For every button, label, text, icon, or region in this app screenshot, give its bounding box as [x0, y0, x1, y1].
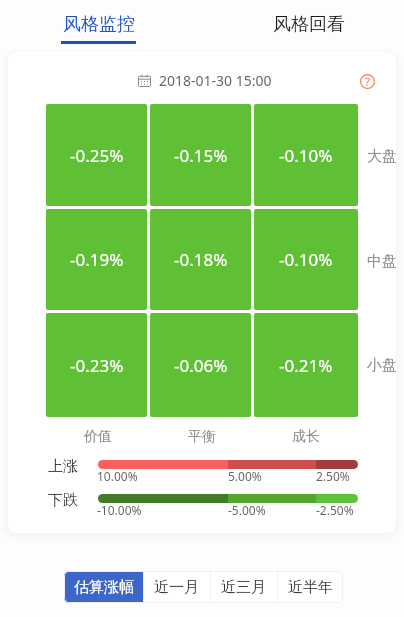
staticText: -0.18% — [174, 248, 228, 271]
staticText: -0.23% — [70, 354, 124, 377]
button[interactable]: -0.19% — [46, 209, 147, 310]
staticText: 风格回看 — [273, 13, 345, 36]
staticText: -0.21% — [279, 354, 333, 377]
staticText: 中盘 — [367, 252, 396, 271]
button[interactable]: 风格回看 — [213, 0, 404, 48]
staticText: -0.10% — [279, 144, 333, 167]
staticText: 风格监控 — [63, 13, 135, 36]
button[interactable]: -0.06% — [150, 313, 251, 417]
staticText: -5.00% — [228, 502, 266, 518]
staticText: -10.00% — [97, 502, 142, 518]
staticText: 估算涨幅 — [74, 578, 134, 597]
staticText: 价值 — [84, 428, 112, 446]
button[interactable]: 近三月 — [210, 571, 277, 603]
staticText: 2018-01-30 15:00 — [159, 71, 272, 90]
button[interactable]: Help — [359, 73, 376, 90]
staticText: 5.00% — [228, 468, 262, 484]
staticText: 成长 — [292, 428, 320, 446]
staticText: ? — [365, 74, 370, 89]
staticText: 10.00% — [97, 468, 138, 484]
staticText: 上涨 — [48, 457, 78, 476]
button[interactable]: -0.10% — [254, 209, 358, 310]
staticText: -0.06% — [174, 354, 228, 377]
staticText: 近一月 — [154, 578, 199, 597]
button[interactable]: -0.25% — [46, 104, 147, 206]
staticText: -0.19% — [70, 248, 124, 271]
staticText: -2.50% — [316, 502, 354, 518]
button[interactable]: 风格监控 — [0, 0, 197, 48]
staticText: -0.15% — [174, 144, 228, 167]
button[interactable]: -0.21% — [254, 313, 358, 417]
button[interactable]: -0.15% — [150, 104, 251, 206]
staticText: 大盘 — [367, 147, 396, 166]
staticText: 平衡 — [188, 428, 216, 446]
button[interactable]: 近半年 — [277, 571, 343, 603]
staticText: 小盘 — [367, 356, 396, 375]
button[interactable]: 近一月 — [143, 571, 210, 603]
button[interactable]: -0.23% — [46, 313, 147, 417]
button[interactable]: -0.10% — [254, 104, 358, 206]
staticText: -0.25% — [70, 144, 124, 167]
staticText: 近半年 — [288, 578, 333, 597]
button[interactable]: 估算涨幅 — [64, 571, 143, 603]
staticText: 2.50% — [316, 468, 350, 484]
button[interactable]: -0.18% — [150, 209, 251, 310]
staticText: 下跌 — [48, 491, 78, 510]
staticText: 近三月 — [221, 578, 266, 597]
staticText: -0.10% — [279, 248, 333, 271]
